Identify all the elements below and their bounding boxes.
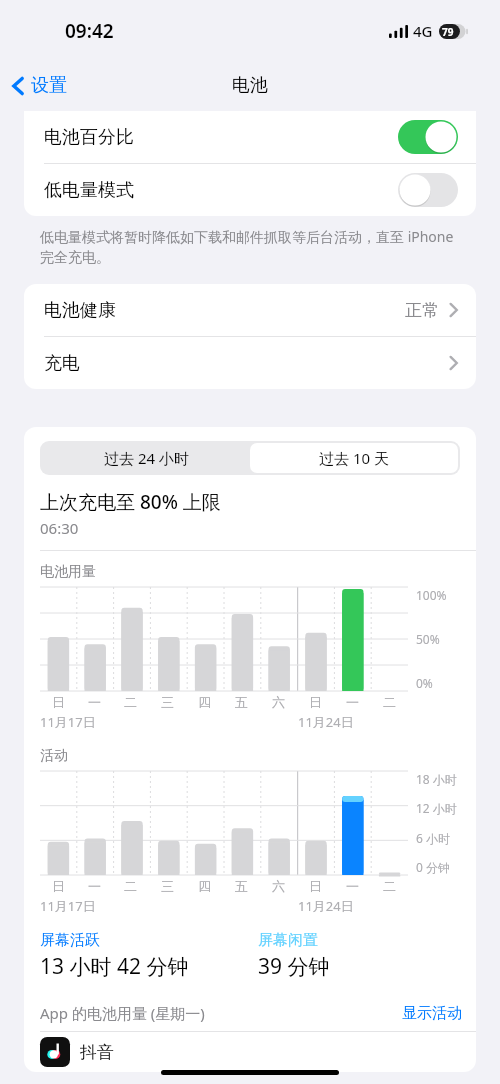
staticText: 11月24日 xyxy=(298,897,354,915)
staticText: 电池健康 xyxy=(44,299,116,322)
staticText: 低电量模式将暂时降低如下载和邮件抓取等后台活动，直至 iPhone 完全充电。 xyxy=(40,227,466,266)
staticText: 日 xyxy=(309,694,322,710)
staticText: 0% xyxy=(416,675,433,691)
staticText: 11月17日 xyxy=(40,713,96,731)
button[interactable]: 充电 xyxy=(24,337,476,389)
button[interactable]: 显示活动 xyxy=(402,1004,462,1023)
staticText: 二 xyxy=(124,878,137,894)
staticText: 五 xyxy=(235,878,248,894)
staticText: 活动 xyxy=(40,747,68,765)
staticText: 四 xyxy=(198,694,211,710)
button[interactable]: 电池百分比 已开启 xyxy=(398,120,458,154)
staticText: 三 xyxy=(161,694,174,710)
button[interactable]: 设置 xyxy=(0,68,77,103)
staticText: 六 xyxy=(272,694,285,710)
staticText: 低电量模式 xyxy=(44,179,134,202)
staticText: 一 xyxy=(88,694,101,710)
staticText: 过去 24 小时 xyxy=(104,448,189,468)
staticText: 50% xyxy=(416,631,440,647)
button[interactable]: 过去 10 天 xyxy=(250,443,458,473)
button[interactable]: 低电量模式 xyxy=(24,164,476,216)
staticText: 11月17日 xyxy=(40,897,96,915)
staticText: 11月24日 xyxy=(298,713,354,731)
staticText: 12 小时 xyxy=(416,800,457,816)
staticText: 一 xyxy=(88,878,101,894)
staticText: 日 xyxy=(309,878,322,894)
staticText: 屏幕闲置 xyxy=(258,931,318,950)
staticText: 屏幕活跃 xyxy=(40,931,100,950)
staticText: 电池用量 xyxy=(40,563,96,581)
staticText: 二 xyxy=(383,878,396,894)
staticText: 0 分钟 xyxy=(416,859,450,875)
staticText: 正常 xyxy=(405,300,439,321)
button[interactable]: 抖音 xyxy=(24,1032,476,1072)
staticText: 二 xyxy=(124,694,137,710)
staticText: 09:42 xyxy=(65,18,114,44)
staticText: 日 xyxy=(52,878,65,894)
staticText: 13 小时 42 分钟 xyxy=(40,952,189,981)
staticText: 4G xyxy=(413,21,433,41)
button[interactable]: 过去 24 小时 xyxy=(42,443,250,473)
staticText: App 的电池用量 (星期一) xyxy=(40,1003,205,1023)
button[interactable]: 低电量模式 已关闭 xyxy=(398,173,458,207)
staticText: 充电 xyxy=(44,352,80,375)
staticText: 电池 xyxy=(232,74,268,97)
button[interactable]: 电池健康 xyxy=(24,284,476,336)
staticText: 六 xyxy=(272,878,285,894)
staticText: 四 xyxy=(198,878,211,894)
staticText: 抖音 xyxy=(80,1042,114,1063)
staticText: 二 xyxy=(383,694,396,710)
button[interactable]: 电池百分比 xyxy=(24,111,476,163)
staticText: 日 xyxy=(52,694,65,710)
staticText: 18 小时 xyxy=(416,771,457,787)
staticText: 显示活动 xyxy=(402,1004,462,1023)
staticText: 79 xyxy=(442,25,454,39)
staticText: 上次充电至 80% 上限 xyxy=(40,489,221,515)
staticText: 三 xyxy=(161,878,174,894)
staticText: 过去 10 天 xyxy=(319,448,389,468)
staticText: 电池百分比 xyxy=(44,126,134,149)
staticText: 100% xyxy=(416,587,447,603)
staticText: 一 xyxy=(346,878,359,894)
staticText: 39 分钟 xyxy=(258,952,330,981)
staticText: 五 xyxy=(235,694,248,710)
staticText: 一 xyxy=(346,694,359,710)
staticText: 设置 xyxy=(31,74,67,97)
staticText: 6 小时 xyxy=(416,830,450,846)
staticText: 06:30 xyxy=(40,518,79,538)
